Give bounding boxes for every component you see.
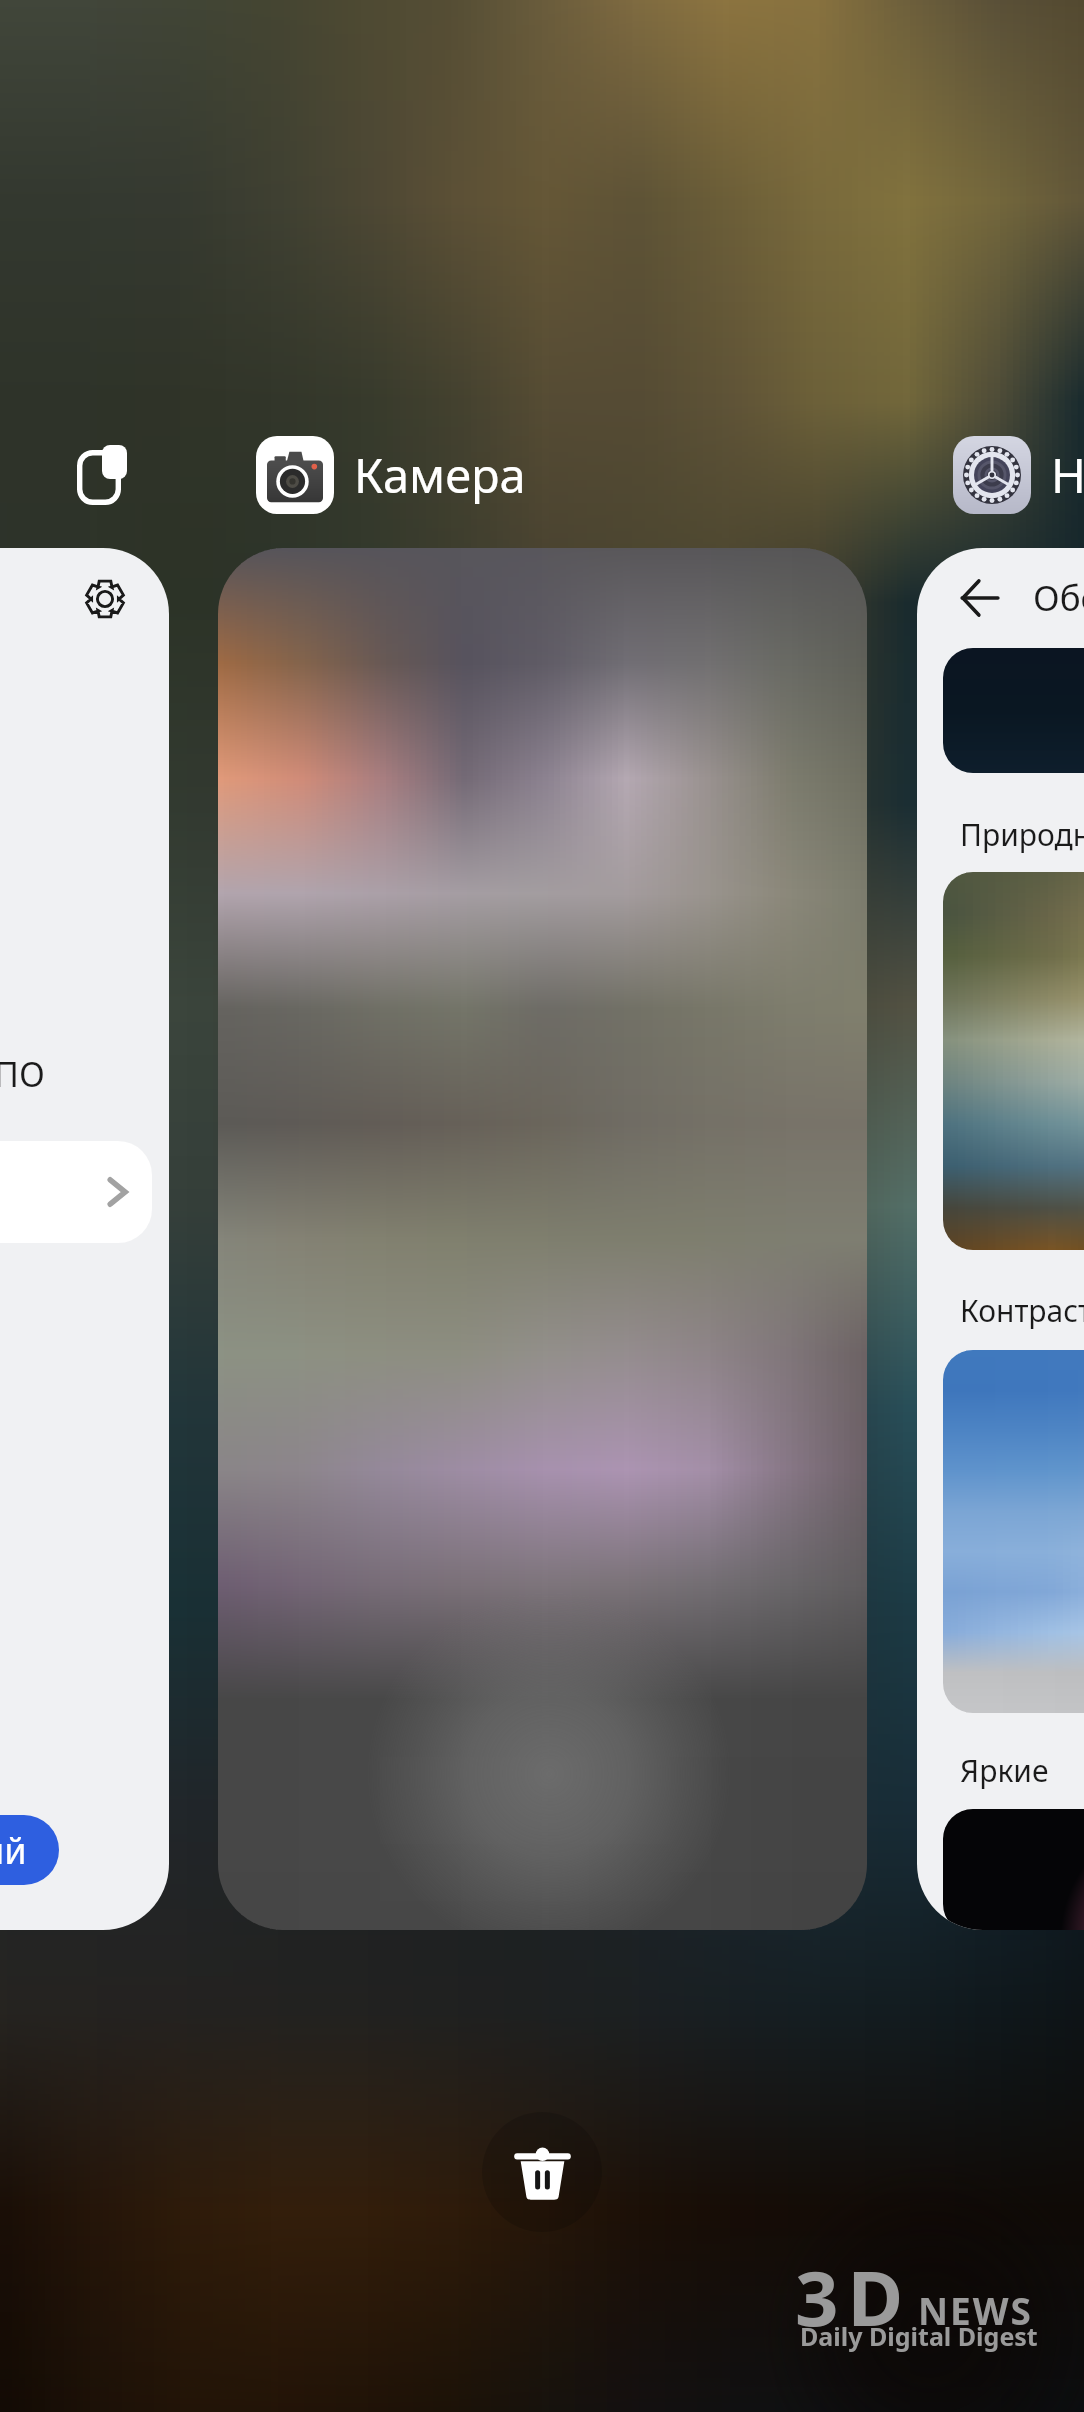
staticText: Daily Digital Digest xyxy=(800,2319,1038,2353)
staticText: Яркие xyxy=(960,1750,1049,1791)
staticText: Н xyxy=(1051,443,1084,507)
button[interactable]: Камера xyxy=(256,432,526,518)
staticText: ий xyxy=(0,1826,27,1875)
button[interactable]: Back xyxy=(938,556,1022,640)
button[interactable]: Clear all xyxy=(482,2112,602,2232)
button[interactable]: Split screen xyxy=(56,424,142,510)
button[interactable]: Н xyxy=(953,432,1084,518)
button[interactable]: ий xyxy=(0,1815,59,1885)
staticText: 3D xyxy=(795,2245,913,2345)
staticText: NEWS xyxy=(918,2285,1033,2335)
staticText: Камера xyxy=(354,443,526,507)
button[interactable]: Settings xyxy=(0,548,169,1930)
staticText: Контрастные xyxy=(960,1290,1084,1331)
button[interactable] xyxy=(0,1141,152,1243)
button[interactable]: Back xyxy=(917,548,1084,1930)
staticText: Обои xyxy=(1033,574,1084,622)
button[interactable]: Settings xyxy=(61,555,149,643)
staticText: ПО xyxy=(0,1051,45,1097)
staticText: Природные xyxy=(960,814,1084,855)
button[interactable] xyxy=(218,548,867,1930)
